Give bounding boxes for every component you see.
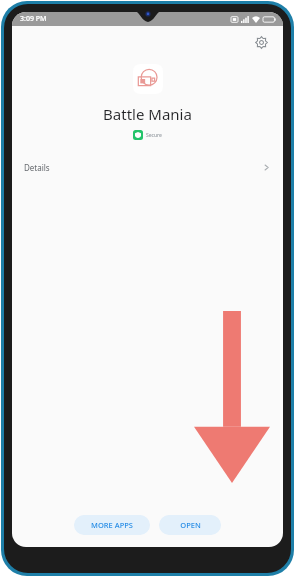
button[interactable]: Details bbox=[12, 152, 283, 182]
staticText: Details bbox=[24, 162, 50, 173]
staticText: 3:09 PM bbox=[20, 14, 47, 24]
staticText: OPEN bbox=[180, 520, 201, 530]
button[interactable]: MORE APPS bbox=[74, 515, 150, 535]
staticText: MORE APPS bbox=[91, 520, 133, 530]
staticText: Secure bbox=[146, 132, 162, 139]
button[interactable]: Settings bbox=[247, 28, 275, 56]
button[interactable]: OPEN bbox=[159, 515, 221, 535]
staticText: Battle Mania bbox=[12, 104, 283, 124]
